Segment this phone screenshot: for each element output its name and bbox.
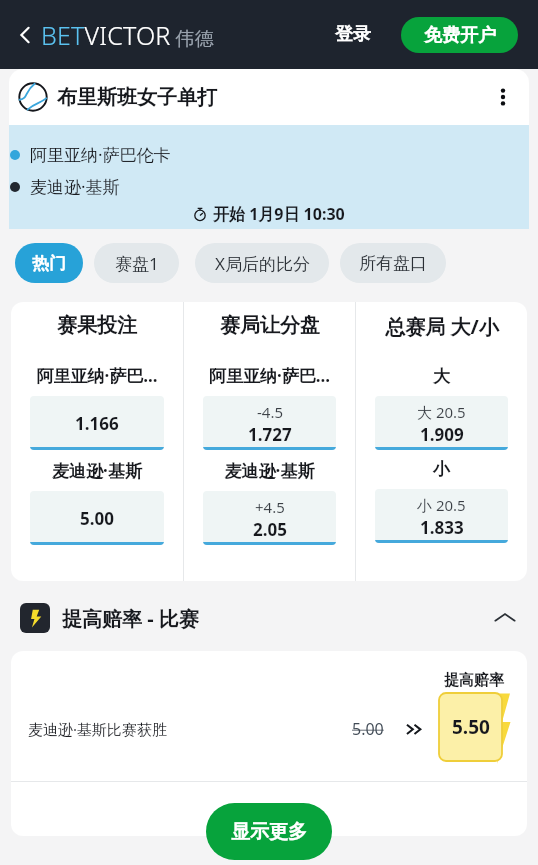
button[interactable]: X局后的比分 — [195, 243, 329, 283]
button[interactable]: 小 20.5 — [375, 489, 508, 543]
staticText: 1.166 — [75, 412, 119, 435]
button[interactable]: 热门 — [15, 243, 83, 283]
staticText: 总赛局 大/小 — [385, 313, 499, 340]
button[interactable]: 1.166 — [30, 396, 164, 450]
button[interactable]: 显示更多 — [206, 803, 332, 860]
staticText: 小 — [375, 459, 508, 480]
staticText: 小 20.5 — [417, 495, 466, 515]
staticText: 登录 — [335, 23, 371, 46]
staticText: 麦迪逊·基斯 — [203, 459, 336, 482]
staticText: 1.909 — [420, 423, 464, 446]
staticText: X局后的比分 — [215, 252, 310, 275]
staticText: 麦迪逊·基斯比赛获胜 — [28, 719, 168, 739]
staticText: BETVICTOR 伟德 — [41, 18, 214, 52]
button[interactable]: +4.5 — [203, 491, 336, 545]
staticText: 布里斯班女子单打 — [57, 85, 217, 110]
button[interactable]: 5.00 — [30, 491, 164, 545]
staticText: 大 20.5 — [417, 402, 466, 422]
staticText: 5.00 — [80, 507, 114, 530]
button[interactable]: -4.5 — [203, 396, 336, 450]
staticText: 开始 1月9日 10:30 — [213, 203, 345, 225]
button[interactable]: 赛盘1 — [94, 243, 179, 283]
staticText: 赛局让分盘 — [220, 313, 320, 338]
staticText: 赛果投注 — [57, 313, 137, 338]
staticText: 显示更多 — [231, 820, 307, 844]
staticText: +4.5 — [255, 497, 285, 517]
staticText: 1.727 — [248, 423, 292, 446]
staticText: 提高赔率 - 比赛 — [62, 605, 199, 632]
staticText: 2.05 — [253, 518, 287, 541]
staticText: 赛盘1 — [115, 252, 159, 275]
staticText: 大 — [375, 366, 508, 387]
button[interactable]: More options — [488, 82, 518, 112]
button[interactable]: 所有盘口 — [340, 243, 446, 283]
staticText: 5.00 — [352, 718, 384, 740]
staticText: 阿里亚纳·萨巴伦卡 — [30, 143, 171, 166]
staticText: -4.5 — [257, 402, 284, 422]
button[interactable]: 布里斯班女子单打 — [9, 69, 529, 125]
button[interactable]: 大 20.5 — [375, 396, 508, 450]
staticText: 5.50 — [452, 714, 490, 740]
staticText: 热门 — [32, 253, 66, 274]
staticText: 所有盘口 — [359, 253, 427, 274]
button[interactable]: 登录 — [327, 17, 379, 52]
staticText: 提高赔率 — [444, 671, 504, 690]
button[interactable]: 5.50 — [439, 693, 502, 761]
staticText: 1.833 — [420, 516, 464, 539]
staticText: 麦迪逊·基斯 — [30, 175, 120, 198]
button[interactable]: Back — [10, 20, 40, 50]
staticText: 阿里亚纳·萨巴... — [203, 364, 336, 387]
staticText: 免费开户 — [424, 24, 496, 47]
button[interactable]: 免费开户 — [401, 17, 518, 53]
button[interactable]: 提高赔率 - 比赛 — [0, 603, 538, 633]
staticText: 麦迪逊·基斯 — [30, 459, 164, 482]
staticText: 阿里亚纳·萨巴... — [30, 364, 164, 387]
